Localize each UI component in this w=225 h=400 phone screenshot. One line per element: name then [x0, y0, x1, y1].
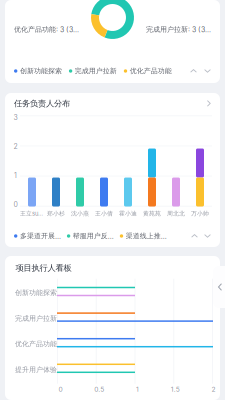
staticText: 1	[136, 385, 139, 393]
staticText: 渠道线上推...	[126, 232, 167, 240]
button[interactable]: Open panel	[213, 266, 225, 308]
staticText: 优化产品功能: 3 (3...	[14, 25, 79, 34]
staticText: 完成用户拉新	[15, 314, 57, 323]
staticText: 黄苑苑	[143, 210, 161, 217]
staticText: 0	[58, 385, 62, 393]
staticText: 2	[211, 385, 215, 393]
staticText: 项目执行人看板	[15, 263, 71, 273]
button[interactable]: 创新功能探索	[5, 59, 220, 83]
staticText: 郑小杉	[47, 210, 65, 217]
staticText: 霍小迪	[119, 210, 137, 217]
staticText: 创新功能探索	[15, 288, 57, 297]
staticText: 多渠道开展...	[20, 232, 61, 240]
staticText: 完成用户拉新: 3 (3...	[146, 25, 211, 34]
staticText: 0	[13, 200, 17, 209]
staticText: 周北北	[167, 210, 185, 217]
staticText: 创新功能探索	[20, 67, 62, 75]
staticText: 王小倩	[95, 210, 113, 217]
staticText: 3	[13, 113, 17, 122]
staticText: 1	[14, 171, 17, 180]
staticText: 万小帅	[191, 210, 209, 217]
staticText: 完成用户拉新	[75, 67, 117, 75]
staticText: 2	[13, 142, 17, 151]
button[interactable]: 任务负责人分布	[5, 93, 220, 114]
button[interactable]: 项目执行人看板	[6, 256, 221, 280]
button[interactable]: 多渠道开展...	[5, 225, 220, 247]
staticText: 王立super	[20, 210, 44, 217]
staticText: 优化产品功能	[130, 67, 172, 75]
staticText: 优化产品功能	[15, 340, 57, 348]
staticText: 1.5	[171, 385, 180, 393]
staticText: 0.5	[94, 385, 104, 393]
staticText: 帮服用户反...	[73, 232, 114, 240]
staticText: 提升用户体验	[15, 365, 57, 374]
staticText: 任务负责人分布	[14, 98, 70, 109]
staticText: 沈小燕	[71, 210, 89, 217]
